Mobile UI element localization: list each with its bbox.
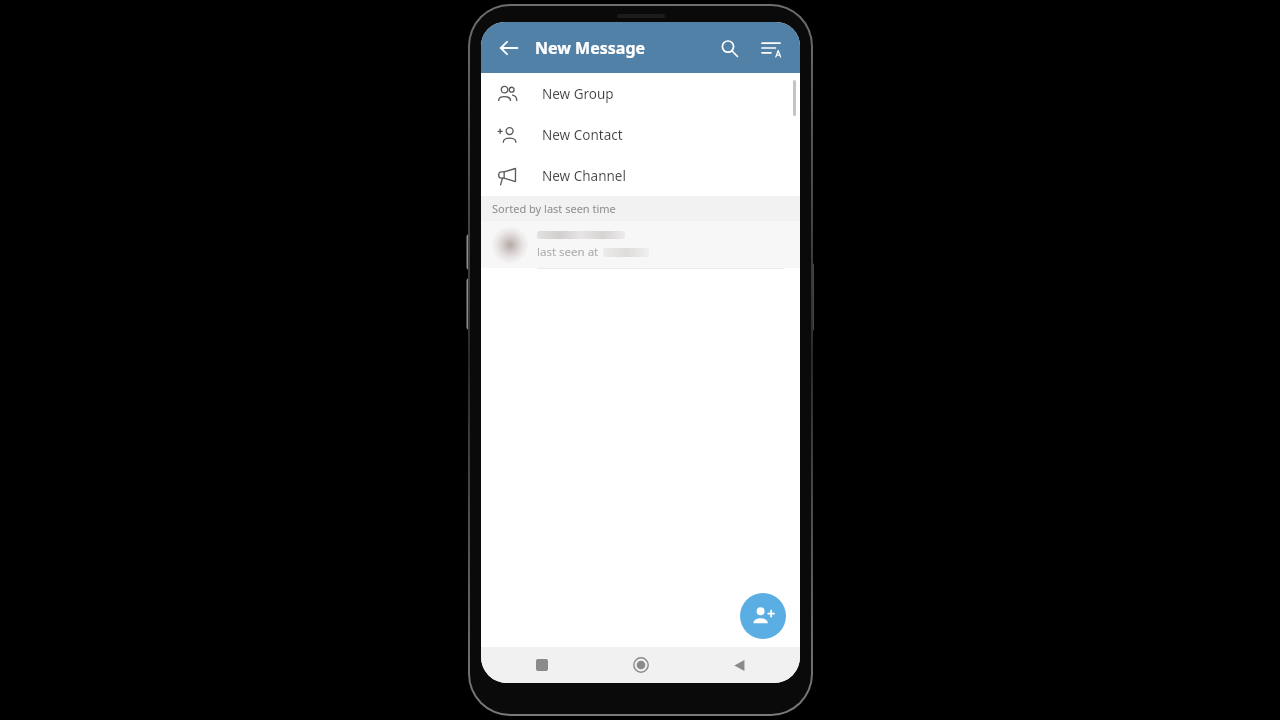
button[interactable]: New Contact bbox=[481, 114, 800, 155]
button[interactable]: Contact bbox=[481, 221, 800, 268]
button[interactable]: Search bbox=[708, 27, 750, 69]
button[interactable]: Back bbox=[489, 28, 529, 68]
button[interactable]: Sort bbox=[750, 27, 792, 69]
staticText: Sorted by last seen time bbox=[492, 201, 616, 216]
button[interactable]: New contact bbox=[740, 593, 786, 639]
button[interactable]: Recents bbox=[527, 650, 557, 680]
button[interactable]: New Channel bbox=[481, 155, 800, 196]
staticText: New Group bbox=[542, 85, 614, 103]
button[interactable]: New Group bbox=[481, 73, 800, 114]
staticText: New Channel bbox=[542, 167, 626, 185]
staticText: New Message bbox=[535, 37, 646, 59]
staticText: New Contact bbox=[542, 126, 623, 144]
staticText: last seen at bbox=[537, 244, 599, 260]
button[interactable]: Home bbox=[626, 650, 656, 680]
button[interactable]: Back bbox=[724, 650, 754, 680]
